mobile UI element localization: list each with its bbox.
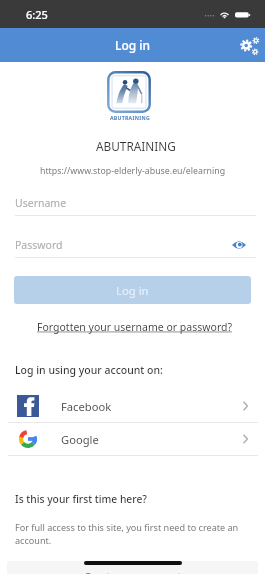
button[interactable]: Username [0, 190, 265, 216]
button[interactable]: Facebook [0, 390, 265, 422]
button[interactable]: Show password [229, 235, 249, 255]
staticText: Create new account [84, 570, 182, 574]
staticText: Is this your first time here? [15, 492, 147, 506]
staticText: Google [61, 432, 99, 447]
staticText: https://www.stop-elderly-abuse.eu/elearn… [40, 165, 226, 177]
button[interactable]: Google [0, 423, 265, 455]
staticText: Log in using your account on: [15, 363, 163, 377]
staticText: Forgotten your username or password? [37, 320, 233, 334]
staticText: Log in [115, 37, 151, 53]
staticText: ABUTRAINING [96, 138, 176, 154]
button[interactable]: Settings [231, 28, 265, 62]
staticText: Log in [116, 283, 149, 298]
staticText: Username [15, 196, 67, 210]
staticText: Password [15, 238, 63, 252]
staticText: ABUTRAINING [110, 114, 150, 121]
staticText: For full access to this site, you first … [15, 521, 243, 547]
staticText: 6:25 [26, 7, 48, 22]
staticText: Facebook [61, 399, 112, 414]
button[interactable]: Log in [14, 276, 251, 304]
button[interactable]: Password [0, 232, 265, 258]
button[interactable]: Create new account [7, 561, 258, 574]
button[interactable]: Forgotten your username or password? [37, 320, 233, 334]
